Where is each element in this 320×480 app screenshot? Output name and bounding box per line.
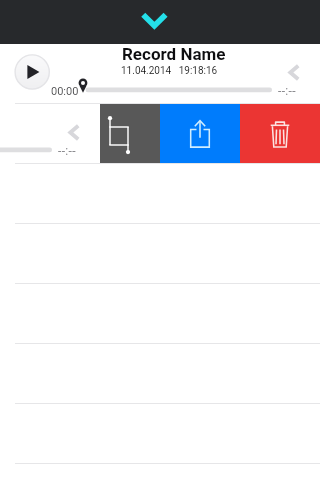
staticText: --:-- (278, 84, 296, 98)
button[interactable]: Trim (100, 104, 160, 163)
button[interactable]: Delete (240, 104, 320, 163)
staticText: Record Name (122, 44, 226, 64)
staticText: 00:00 (51, 85, 79, 98)
staticText: 11.04.2014 19:18:16 (121, 65, 218, 77)
button[interactable]: Record Name (0, 44, 320, 103)
button[interactable]: Share (160, 104, 240, 163)
button[interactable]: --:-- (0, 104, 100, 163)
staticText: --:-- (58, 144, 76, 158)
button[interactable]: Collapse player (0, 0, 320, 44)
